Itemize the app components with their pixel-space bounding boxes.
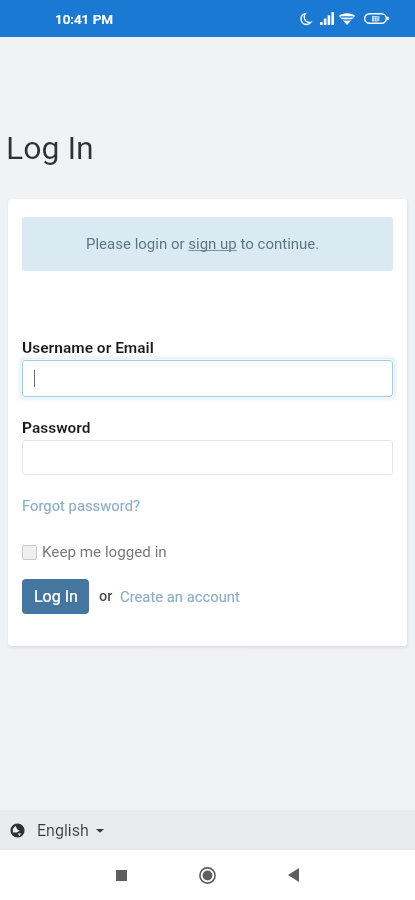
staticText: Log In: [6, 129, 94, 167]
staticText: Username or Email: [22, 339, 154, 357]
staticText: English: [37, 821, 89, 840]
button[interactable]: Recent apps: [97, 851, 145, 899]
button[interactable]: Create an account: [120, 588, 240, 605]
button[interactable]: Forgot password?: [22, 497, 141, 514]
staticText: Please login or sign up to continue.: [86, 235, 320, 253]
button[interactable]: Log In: [22, 579, 89, 614]
staticText: 10:41 PM: [55, 11, 114, 27]
staticText: Password: [22, 419, 91, 437]
staticText: Log In: [34, 587, 78, 606]
button[interactable]: Home: [183, 851, 231, 899]
staticText: or: [99, 588, 113, 605]
button[interactable]: English: [11, 821, 104, 840]
staticText: Keep me logged in: [42, 543, 167, 561]
button[interactable]: Keep me logged in: [22, 543, 167, 561]
button[interactable]: [22, 440, 393, 475]
button[interactable]: [22, 360, 393, 397]
button[interactable]: Back: [269, 851, 317, 899]
